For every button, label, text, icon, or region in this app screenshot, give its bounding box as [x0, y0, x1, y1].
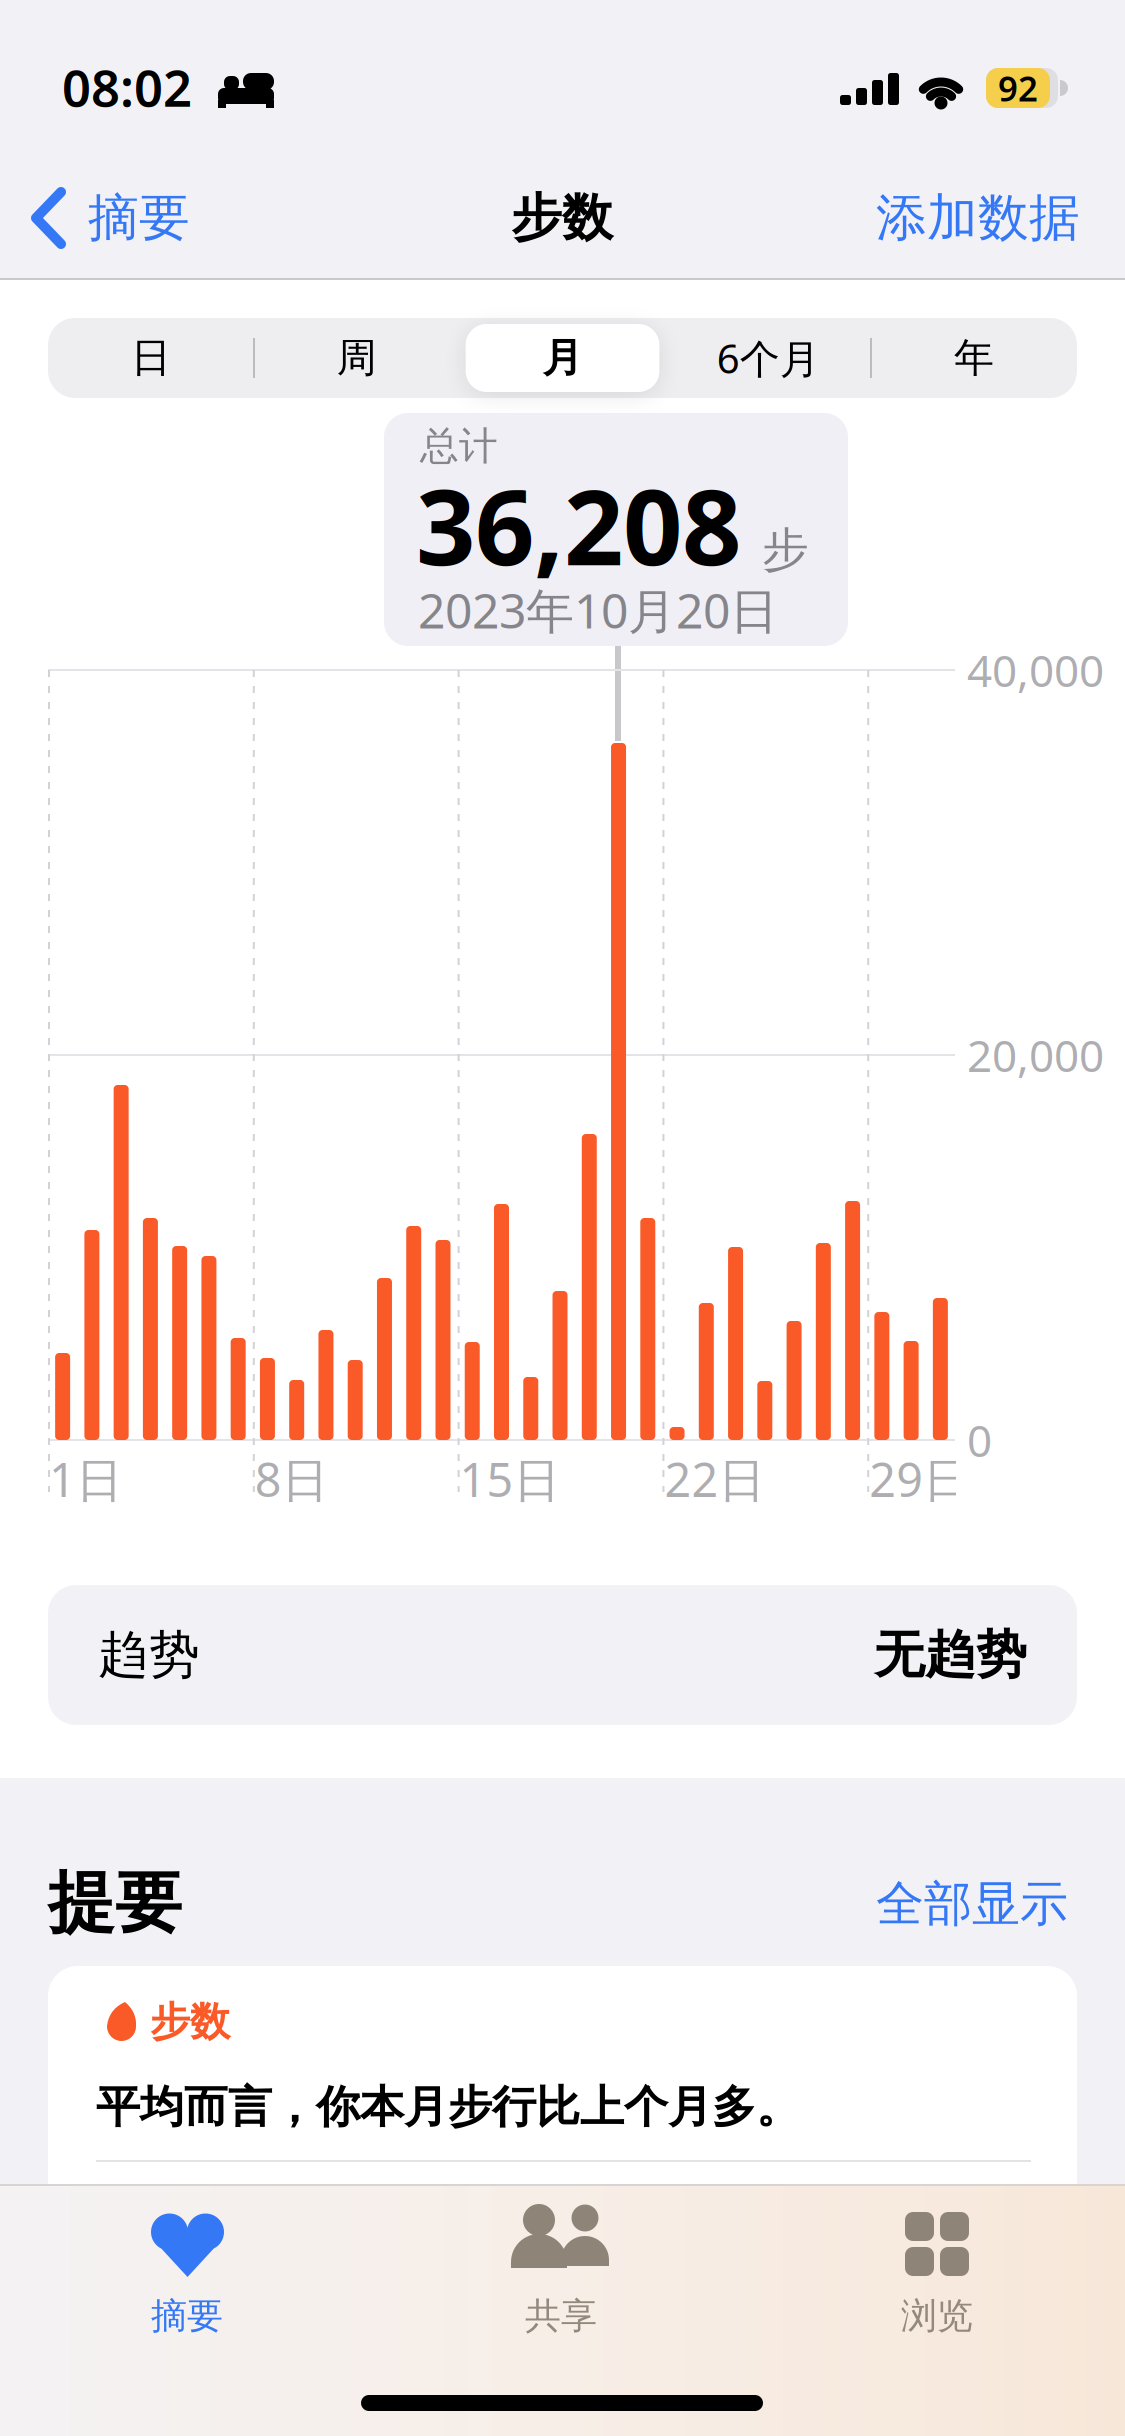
- staticText: 92: [998, 65, 1038, 111]
- button[interactable]: 共享: [0, 0, 1125, 2436]
- staticText: 提要: [48, 1862, 182, 1944]
- button[interactable]: 步数: [0, 0, 1125, 2436]
- staticText: 浏览: [901, 2294, 973, 2338]
- button[interactable]: 摘要: [0, 0, 1125, 2436]
- staticText: 添加数据: [876, 187, 1080, 249]
- staticText: 08:02: [62, 53, 192, 121]
- staticText: 29日: [869, 1448, 970, 1510]
- button[interactable]: 6个月: [0, 0, 206, 80]
- staticText: 周: [337, 333, 377, 382]
- button[interactable]: 周: [0, 0, 206, 80]
- button[interactable]: 月: [0, 0, 206, 80]
- staticText: 年: [954, 333, 994, 382]
- staticText: 步数: [511, 187, 613, 249]
- staticText: 摘要: [151, 2294, 223, 2338]
- staticText: 2023年10月20日: [418, 578, 778, 642]
- button[interactable]: 摘要: [0, 0, 1125, 2436]
- staticText: 36,208: [416, 456, 741, 594]
- staticText: 月: [542, 333, 582, 382]
- staticText: 20,000: [967, 1026, 1104, 1084]
- staticText: 全部显示: [876, 1874, 1068, 1933]
- staticText: 日: [131, 333, 171, 382]
- staticText: 22日: [664, 1448, 765, 1510]
- button[interactable]: 浏览: [0, 0, 1125, 2436]
- staticText: 0: [967, 1411, 992, 1469]
- staticText: 6个月: [717, 331, 820, 384]
- staticText: 趋势: [98, 1624, 200, 1686]
- staticText: 步数: [150, 1997, 230, 2046]
- staticText: 摘要: [88, 187, 190, 249]
- button[interactable]: 日: [0, 0, 206, 80]
- staticText: 无趋势: [874, 1624, 1027, 1686]
- button[interactable]: 年: [0, 0, 206, 80]
- staticText: 步: [762, 521, 809, 579]
- staticText: 总计: [420, 422, 498, 470]
- staticText: 15日: [460, 1448, 561, 1510]
- staticText: 平均而言，你本月步行比上个月多。: [96, 2080, 800, 2134]
- staticText: 1日: [49, 1448, 123, 1510]
- staticText: 8日: [255, 1448, 329, 1510]
- staticText: 40,000: [967, 641, 1104, 699]
- staticText: 共享: [525, 2294, 597, 2338]
